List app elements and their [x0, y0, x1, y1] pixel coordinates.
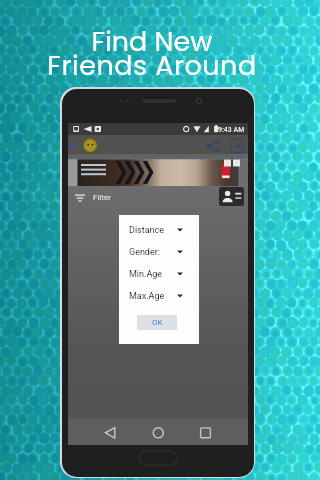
button[interactable]: Max.Age [119, 285, 199, 307]
staticText: Gender: [129, 247, 160, 258]
staticText: Filter [93, 193, 111, 202]
staticText: Min.Age [129, 269, 163, 280]
button[interactable]: Contacts [219, 187, 244, 206]
button[interactable]: Gender: [119, 241, 199, 263]
button[interactable]: Share [205, 138, 221, 154]
staticText: OK [152, 318, 163, 327]
staticText: Max.Age [129, 291, 165, 302]
button[interactable]: Min.Age [119, 263, 199, 285]
button[interactable]: Exit [229, 138, 245, 154]
staticText: Find New [0, 23, 312, 61]
button[interactable]: Filter [75, 192, 103, 202]
staticText: 9:43 AM [218, 125, 245, 134]
button[interactable]: Distance [119, 219, 199, 241]
button[interactable]: Menu [68, 139, 77, 151]
button[interactable]: OK [137, 315, 177, 330]
staticText: Friends Around [0, 47, 312, 85]
staticText: Distance [129, 225, 165, 236]
